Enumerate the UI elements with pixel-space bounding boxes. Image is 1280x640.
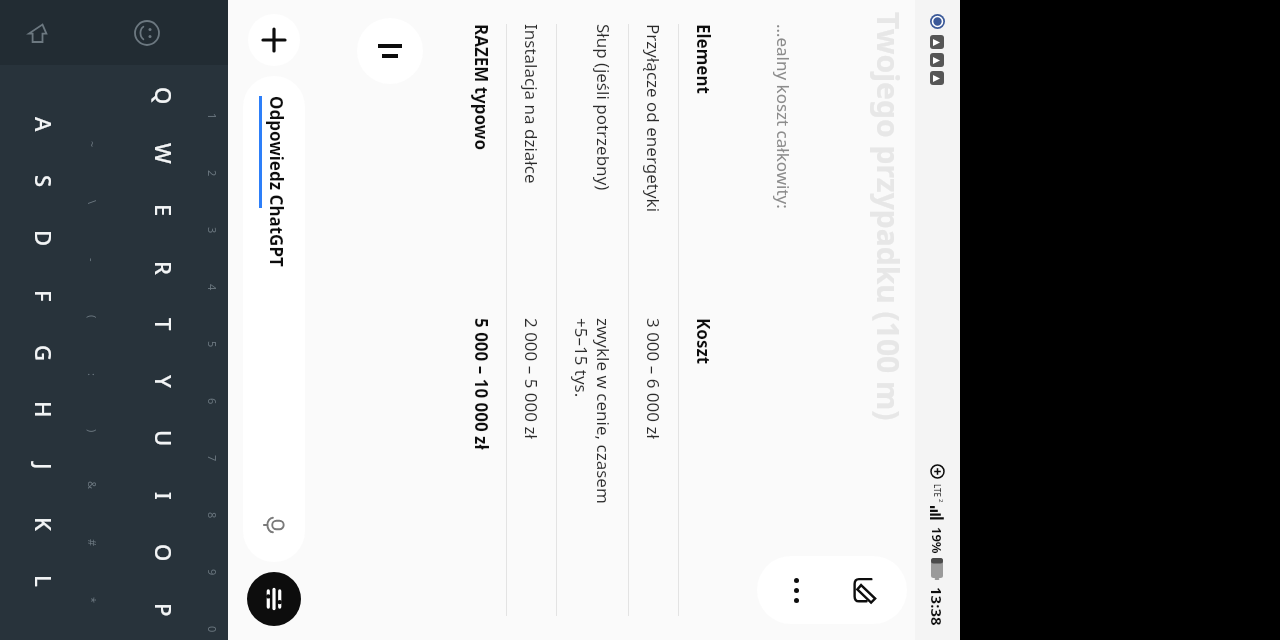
button[interactable]: 7 [104, 410, 224, 467]
button[interactable]: 8 [104, 467, 224, 524]
staticText: Koszt [692, 318, 715, 616]
button[interactable]: More options [766, 559, 828, 621]
button[interactable]: 9 [104, 524, 224, 581]
staticText: Słup (jeśli potrzebny) [592, 24, 615, 308]
staticText: LTE [932, 484, 943, 498]
staticText: 5 [205, 341, 220, 348]
staticText: S [29, 175, 59, 188]
staticText: I [149, 492, 179, 500]
staticText: F [29, 290, 59, 302]
button[interactable]: 0 [104, 581, 224, 638]
staticText: 2 [205, 170, 220, 177]
staticText: Y [149, 375, 179, 388]
button[interactable]: Pause [357, 18, 423, 84]
staticText: # [85, 539, 100, 547]
button[interactable]: # [0, 495, 104, 552]
staticText: L [29, 575, 59, 587]
staticText: - [85, 258, 100, 262]
staticText: 9 [205, 569, 220, 576]
button[interactable]: \ [0, 153, 104, 210]
button[interactable]: Dictate [257, 508, 291, 542]
staticText: \ [85, 200, 100, 205]
staticText: Instalacja na działce [520, 24, 543, 308]
staticText: 6 [205, 398, 220, 405]
staticText: 13:38 [927, 587, 947, 626]
staticText: E [149, 204, 179, 217]
staticText: Q [149, 87, 179, 105]
staticText: 0 [205, 626, 220, 633]
staticText: & [85, 481, 100, 490]
staticText: D [29, 230, 59, 247]
staticText: Twojego przypadku (100 m) [868, 12, 909, 421]
button[interactable]: * [0, 552, 104, 609]
button[interactable]: Stickers [10, 5, 66, 61]
staticText: ~ [85, 141, 100, 148]
staticText: 4 [205, 284, 220, 291]
staticText: ( [85, 315, 100, 319]
button[interactable]: 3 [104, 182, 224, 239]
staticText: W [149, 143, 179, 164]
button[interactable]: ~ [0, 96, 104, 153]
button[interactable]: Edit [836, 559, 898, 621]
staticText: H [29, 401, 59, 418]
staticText: 3 000 – 6 000 zł [642, 318, 665, 616]
button[interactable]: - [0, 210, 104, 267]
button[interactable]: 5 [104, 296, 224, 353]
staticText: P [149, 603, 179, 617]
button[interactable]: & [0, 438, 104, 495]
staticText: 2 [937, 499, 945, 503]
staticText: * [85, 597, 100, 604]
staticText: ) [85, 429, 100, 433]
staticText: : [85, 373, 100, 376]
staticText: …ealny koszt całkowity: [772, 24, 795, 209]
button[interactable]: Emoji [119, 5, 175, 61]
button[interactable]: Odpowiedz ChatGPT [243, 76, 305, 562]
staticText: T [149, 318, 179, 331]
staticText: 8 [205, 512, 220, 519]
button[interactable]: Add attachment [248, 14, 300, 66]
button[interactable]: ) [0, 381, 104, 438]
button[interactable]: 1 [104, 67, 224, 125]
button[interactable]: 6 [104, 353, 224, 410]
staticText: K [29, 517, 59, 531]
staticText: Odpowiedz ChatGPT [265, 96, 288, 267]
staticText: Przyłącze od energetyki [642, 24, 665, 308]
staticText: R [149, 261, 179, 275]
staticText: U [149, 430, 179, 447]
button[interactable]: ( [0, 267, 104, 324]
staticText: RAZEM typowo [470, 24, 493, 308]
staticText: zwykle w cenie, czasem +5–15 tys. [570, 318, 615, 616]
staticText: 7 [205, 455, 220, 462]
staticText: J [29, 463, 59, 470]
staticText: G [29, 345, 59, 361]
staticText: 2 000 – 5 000 zł [520, 318, 543, 616]
staticText: A [29, 117, 59, 132]
staticText: 1 [205, 113, 220, 120]
button[interactable]: Voice mode [247, 572, 301, 626]
staticText: Element [692, 24, 715, 308]
staticText: O [149, 544, 179, 562]
staticText: 19% [928, 527, 946, 554]
button[interactable]: 2 [104, 125, 224, 182]
button[interactable]: : [0, 324, 104, 381]
staticText: 3 [205, 227, 220, 234]
button[interactable]: 4 [104, 239, 224, 296]
staticText: 5 000 – 10 000 zł [470, 318, 493, 616]
